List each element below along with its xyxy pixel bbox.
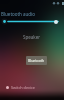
staticText: Switch device (11, 85, 35, 90)
button[interactable]: Bluetooth (26, 56, 47, 65)
button[interactable]: Switch device (6, 84, 64, 90)
staticText: Bluetooth (28, 58, 45, 63)
staticText: Bluetooth audio (1, 11, 36, 17)
other: Call volume (1, 18, 8, 25)
staticText: Speaker (23, 34, 41, 40)
